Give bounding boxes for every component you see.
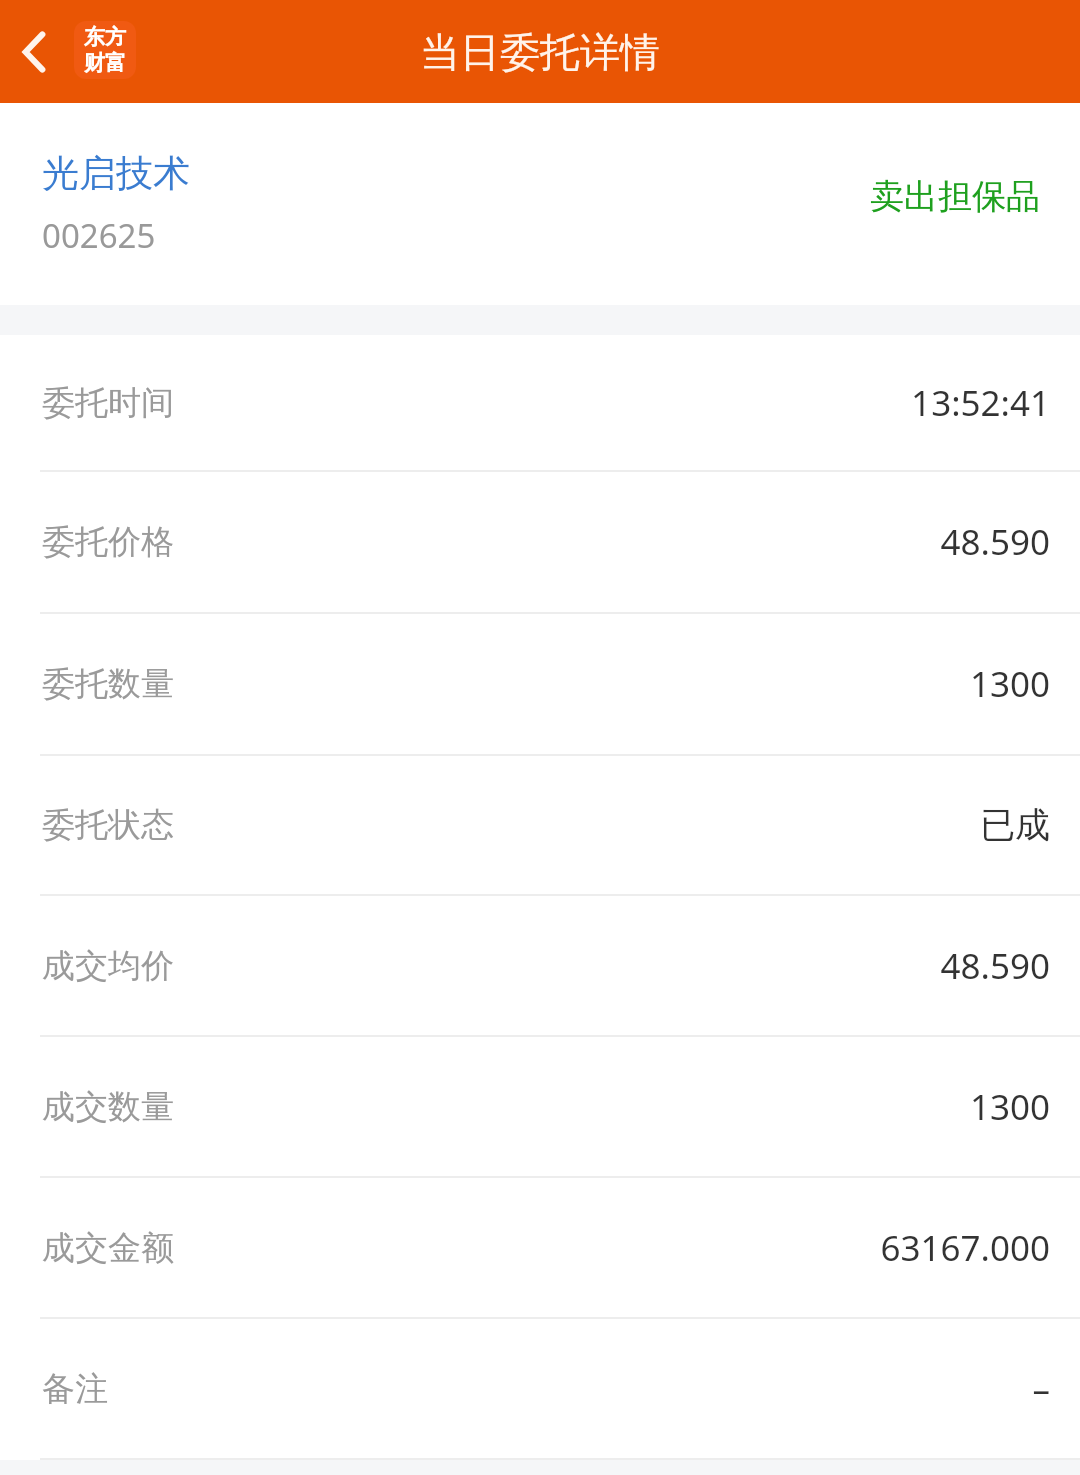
button[interactable]: 委托数量 bbox=[0, 614, 1080, 754]
staticText: 当日委托详情 bbox=[420, 27, 660, 77]
staticText: 63167.000 bbox=[880, 1224, 1050, 1272]
button[interactable]: 委托价格 bbox=[0, 472, 1080, 612]
staticText: 48.590 bbox=[940, 942, 1050, 990]
staticText: 财富 bbox=[84, 50, 126, 76]
staticText: 委托状态 bbox=[42, 804, 174, 846]
button[interactable]: 成交金额 bbox=[0, 1178, 1080, 1317]
button[interactable]: 备注 bbox=[0, 1319, 1080, 1458]
staticText: 002625 bbox=[42, 213, 156, 258]
staticText: 已成 bbox=[980, 803, 1050, 847]
button[interactable]: 委托状态 bbox=[0, 756, 1080, 894]
staticText: – bbox=[1032, 1365, 1050, 1413]
button[interactable]: 成交数量 bbox=[0, 1037, 1080, 1176]
staticText: 光启技术 bbox=[42, 150, 190, 197]
staticText: 成交数量 bbox=[42, 1086, 174, 1128]
staticText: 13:52:41 bbox=[911, 379, 1050, 427]
staticText: 卖出担保品 bbox=[870, 175, 1040, 218]
button[interactable]: Back bbox=[0, 8, 72, 96]
staticText: 成交金额 bbox=[42, 1227, 174, 1269]
button[interactable]: 委托时间 bbox=[0, 335, 1080, 470]
button[interactable]: 光启技术 bbox=[0, 103, 1080, 305]
staticText: 1300 bbox=[969, 660, 1050, 708]
staticText: 委托时间 bbox=[42, 382, 174, 424]
button[interactable]: 成交均价 bbox=[0, 896, 1080, 1035]
staticText: 委托价格 bbox=[42, 521, 174, 563]
staticText: 成交均价 bbox=[42, 945, 174, 987]
staticText: 东方 bbox=[84, 24, 126, 50]
staticText: 1300 bbox=[969, 1083, 1050, 1131]
staticText: 备注 bbox=[42, 1368, 108, 1410]
staticText: 委托数量 bbox=[42, 663, 174, 705]
staticText: 48.590 bbox=[940, 518, 1050, 566]
